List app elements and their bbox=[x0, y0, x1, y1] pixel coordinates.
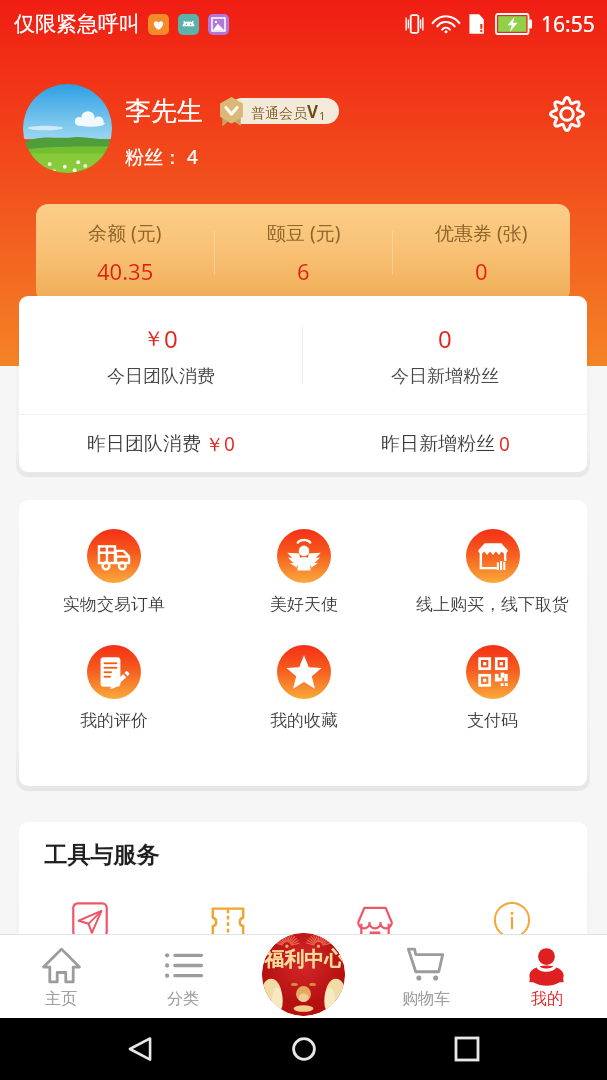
staticText: 余额 (元) bbox=[88, 220, 162, 246]
button[interactable]: Back bbox=[117, 1026, 163, 1072]
button[interactable]: 店铺 bbox=[352, 897, 398, 943]
button[interactable]: Recents bbox=[444, 1026, 490, 1072]
button[interactable]: 分享 bbox=[67, 897, 113, 943]
staticText: 昨日新增粉丝 bbox=[381, 432, 495, 456]
button[interactable]: Settings bbox=[542, 89, 592, 139]
button[interactable]: 优惠券 bbox=[205, 897, 251, 943]
staticText: 福利中心 bbox=[264, 947, 344, 972]
staticText: 仅限紧急呼叫 bbox=[14, 11, 140, 37]
button[interactable]: 优惠券 (张) bbox=[393, 204, 570, 302]
button[interactable]: 昨日新增粉丝 bbox=[303, 415, 587, 472]
button[interactable]: 支付码 bbox=[398, 645, 587, 731]
staticText: 美好天使 bbox=[270, 594, 338, 615]
button[interactable]: 昨日团队消费 bbox=[19, 415, 303, 472]
button[interactable]: 普通会员 bbox=[251, 98, 326, 124]
staticText: 昨日团队消费 bbox=[87, 432, 201, 456]
staticText: 我的收藏 bbox=[270, 710, 338, 731]
button[interactable]: 帮助 bbox=[489, 897, 535, 943]
staticText: 支付码 bbox=[467, 710, 518, 731]
staticText: 颐豆 (元) bbox=[267, 220, 341, 246]
staticText: ￥ bbox=[143, 326, 164, 352]
button[interactable]: 福利中心 bbox=[262, 933, 345, 1016]
staticText: 分类 bbox=[167, 989, 199, 1009]
staticText: 今日新增粉丝 bbox=[391, 365, 499, 388]
staticText: 我的 bbox=[531, 989, 563, 1009]
staticText: 0 bbox=[164, 322, 178, 355]
staticText: 主页 bbox=[45, 989, 77, 1009]
button[interactable]: 0 bbox=[303, 296, 587, 414]
button[interactable]: 分类 bbox=[122, 934, 244, 1018]
staticText: V bbox=[307, 100, 319, 123]
staticText: ￥0 bbox=[205, 431, 235, 457]
staticText: 优惠券 (张) bbox=[435, 220, 528, 246]
staticText: 李先生 bbox=[125, 95, 203, 128]
button[interactable]: Home bbox=[281, 1026, 327, 1072]
button[interactable]: 购物车 bbox=[365, 934, 486, 1018]
button[interactable]: ￥ bbox=[19, 296, 302, 414]
staticText: 今日团队消费 bbox=[107, 365, 215, 388]
button[interactable]: 我的评价 bbox=[19, 645, 209, 731]
staticText: 工具与服务 bbox=[44, 841, 159, 870]
staticText: 40.35 bbox=[97, 256, 154, 286]
staticText: 16:55 bbox=[541, 10, 595, 39]
staticText: 6 bbox=[297, 256, 310, 286]
button[interactable]: 余额 (元) bbox=[36, 204, 214, 302]
button[interactable]: 我的 bbox=[486, 934, 607, 1018]
staticText: 线上购买，线下取货 bbox=[416, 594, 569, 615]
staticText: 0 bbox=[499, 431, 510, 457]
button[interactable]: 线上购买，线下取货 bbox=[398, 529, 587, 615]
button[interactable]: 我的收藏 bbox=[209, 645, 398, 731]
staticText: 0 bbox=[475, 256, 488, 286]
button[interactable]: Avatar bbox=[23, 84, 112, 173]
staticText: 购物车 bbox=[402, 989, 450, 1009]
staticText: 我的评价 bbox=[80, 710, 148, 731]
button[interactable]: 实物交易订单 bbox=[19, 529, 209, 615]
staticText: 0 bbox=[438, 322, 452, 355]
staticText: 实物交易订单 bbox=[63, 594, 165, 615]
staticText: 1 bbox=[319, 108, 326, 123]
staticText: 普通会员 bbox=[251, 105, 307, 123]
button[interactable]: 美好天使 bbox=[209, 529, 398, 615]
button[interactable]: 颐豆 (元) bbox=[215, 204, 392, 302]
staticText: 粉丝： 4 bbox=[125, 144, 198, 170]
button[interactable]: 主页 bbox=[0, 934, 122, 1018]
